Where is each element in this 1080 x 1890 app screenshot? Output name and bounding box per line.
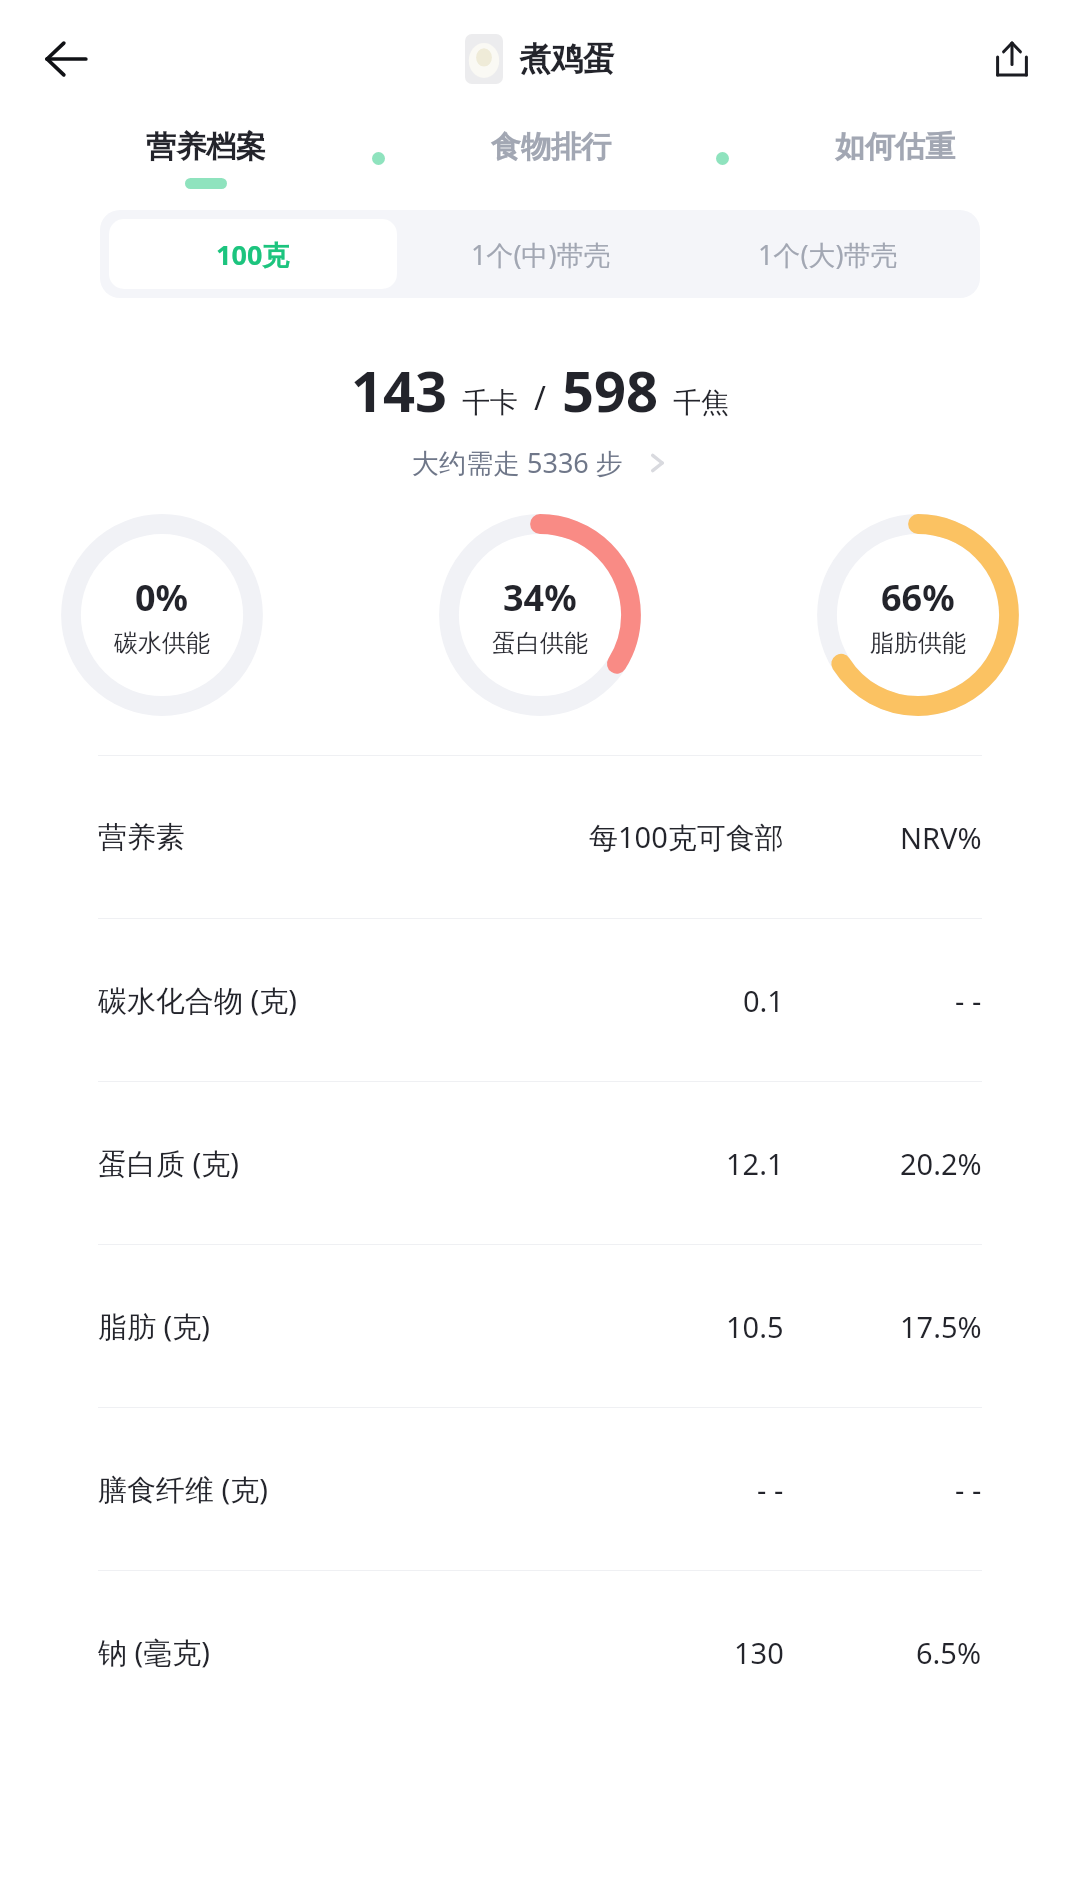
staticText: 钠 (毫克) bbox=[98, 1632, 210, 1672]
staticText: 营养素 bbox=[98, 819, 185, 856]
staticText: 千卡 bbox=[462, 385, 518, 420]
staticText: 碳水供能 bbox=[114, 628, 210, 658]
button[interactable]: 100克 bbox=[109, 219, 397, 289]
staticText: 12.1 bbox=[726, 1144, 784, 1183]
button[interactable]: 1个(中)带壳 bbox=[397, 219, 684, 289]
staticText: 1个(大)带壳 bbox=[758, 236, 898, 273]
staticText: 6.5% bbox=[916, 1633, 982, 1672]
staticText: 20.2% bbox=[900, 1144, 982, 1183]
staticText: 100克 bbox=[216, 236, 290, 273]
staticText: / bbox=[534, 376, 546, 420]
staticText: 34% bbox=[503, 573, 577, 622]
staticText: 1个(中)带壳 bbox=[471, 236, 611, 273]
staticText: 66% bbox=[881, 573, 955, 622]
staticText: 碳水化合物 (克) bbox=[98, 980, 297, 1020]
staticText: 煮鸡蛋 bbox=[519, 39, 615, 79]
button[interactable]: 如何估重 bbox=[729, 128, 1060, 189]
button[interactable]: 膳食纤维 (克) bbox=[98, 1408, 982, 1570]
staticText: 598 bbox=[562, 352, 659, 428]
button[interactable]: Share bbox=[974, 21, 1050, 97]
button[interactable]: Back bbox=[28, 21, 104, 97]
staticText: 食物排行 bbox=[491, 128, 611, 166]
staticText: 10.5 bbox=[726, 1307, 784, 1346]
staticText: 脂肪 (克) bbox=[98, 1306, 210, 1346]
staticText: 每100克可食部 bbox=[589, 817, 784, 857]
staticText: 如何估重 bbox=[835, 128, 955, 166]
staticText: 17.5% bbox=[900, 1307, 982, 1346]
button[interactable]: 营养档案 bbox=[40, 128, 372, 189]
staticText: - - bbox=[757, 1470, 784, 1509]
staticText: 蛋白质 (克) bbox=[98, 1143, 239, 1183]
button[interactable]: 大约需走 5336 步 bbox=[412, 444, 669, 481]
staticText: 143 bbox=[351, 352, 448, 428]
staticText: - - bbox=[955, 981, 982, 1020]
staticText: 膳食纤维 (克) bbox=[98, 1469, 268, 1509]
button[interactable]: 营养素 bbox=[98, 756, 982, 918]
staticText: NRV% bbox=[900, 818, 982, 857]
button[interactable]: 脂肪 (克) bbox=[98, 1245, 982, 1407]
staticText: 脂肪供能 bbox=[870, 628, 966, 658]
staticText: 0.1 bbox=[743, 981, 784, 1020]
button[interactable]: 食物排行 bbox=[385, 128, 716, 189]
staticText: 130 bbox=[734, 1633, 784, 1672]
staticText: 大约需走 5336 步 bbox=[412, 444, 623, 481]
staticText: 千焦 bbox=[673, 385, 729, 420]
button[interactable]: 碳水化合物 (克) bbox=[98, 919, 982, 1081]
staticText: 蛋白供能 bbox=[492, 628, 588, 658]
button[interactable]: 蛋白质 (克) bbox=[98, 1082, 982, 1244]
button[interactable]: 钠 (毫克) bbox=[98, 1571, 982, 1733]
button[interactable]: 1个(大)带壳 bbox=[684, 219, 971, 289]
staticText: 0% bbox=[135, 573, 189, 622]
staticText: 营养档案 bbox=[146, 128, 266, 166]
staticText: - - bbox=[955, 1470, 982, 1509]
